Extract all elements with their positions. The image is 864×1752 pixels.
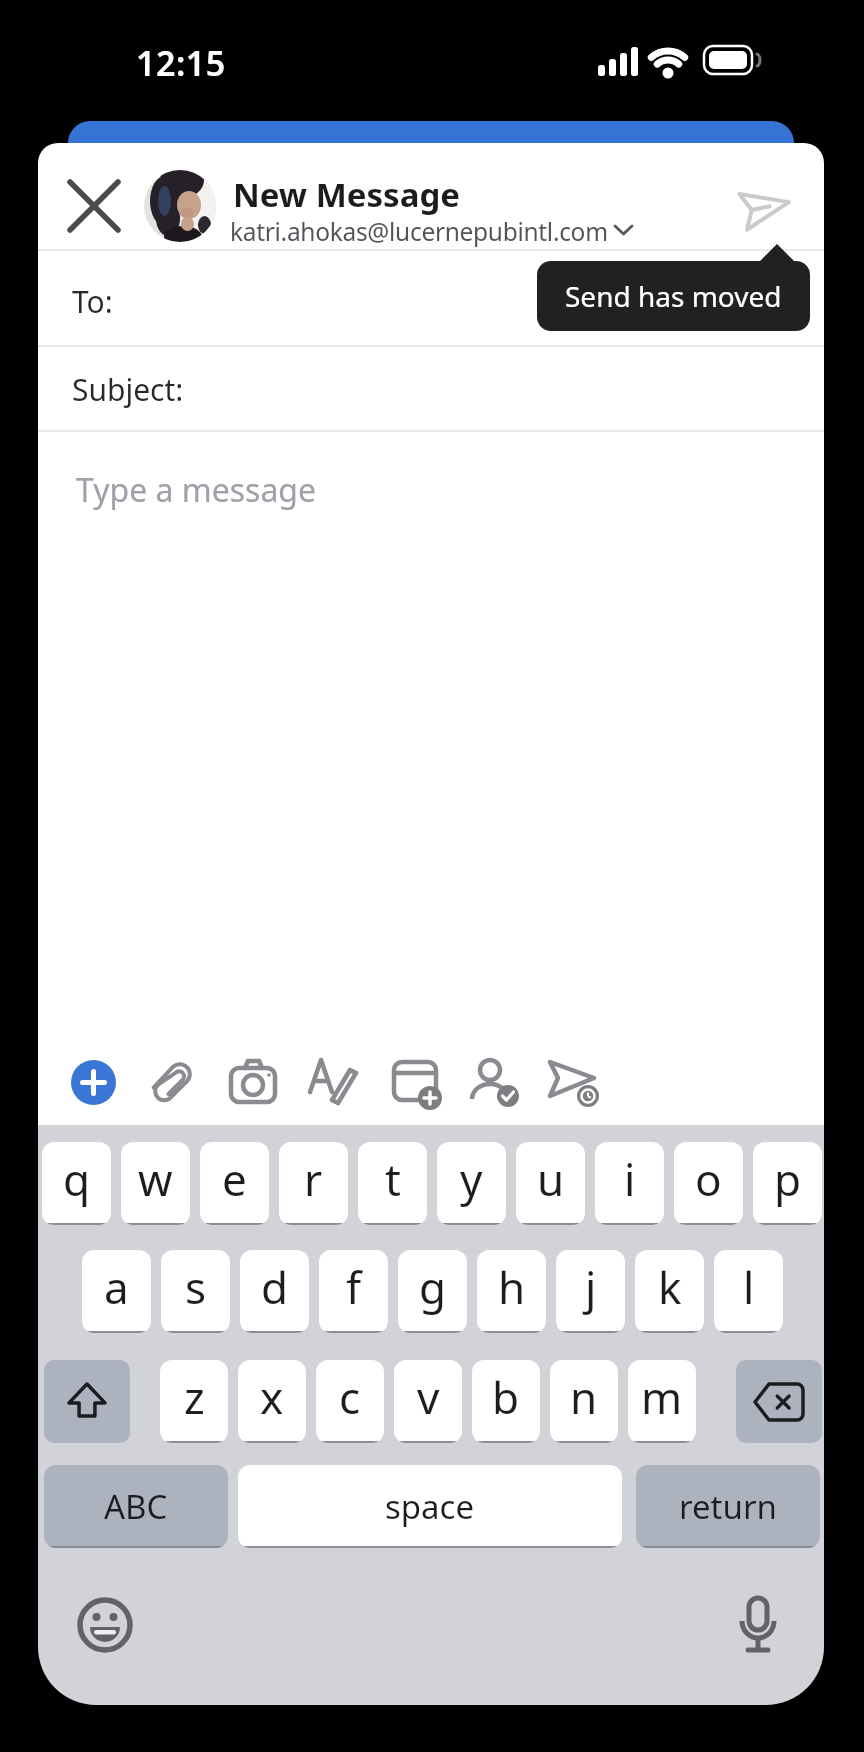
staticText: ABC	[104, 1484, 168, 1529]
staticText: z	[184, 1367, 205, 1427]
staticText: f	[346, 1257, 362, 1317]
button[interactable]	[76, 1596, 134, 1654]
button[interactable]	[71, 1060, 116, 1105]
button[interactable]: x	[238, 1360, 306, 1443]
button[interactable]: g	[398, 1250, 467, 1333]
button[interactable]: r	[279, 1142, 348, 1225]
staticText: k	[658, 1257, 682, 1317]
staticText: g	[419, 1257, 447, 1317]
staticText: katri.ahokas@lucernepubintl.com	[230, 215, 608, 248]
button[interactable]: o	[674, 1142, 743, 1225]
button[interactable]: To:	[38, 251, 824, 346]
staticText: t	[385, 1149, 401, 1209]
staticText: i	[624, 1149, 636, 1209]
staticText: l	[743, 1257, 755, 1317]
button[interactable]: z	[160, 1360, 228, 1443]
button[interactable]	[306, 1056, 358, 1108]
button[interactable]: i	[595, 1142, 664, 1225]
button[interactable]: b	[472, 1360, 540, 1443]
button[interactable]: k	[635, 1250, 704, 1333]
button[interactable]	[548, 1056, 600, 1108]
button[interactable]: return	[636, 1465, 820, 1548]
staticText: e	[222, 1149, 247, 1209]
button[interactable]: j	[556, 1250, 625, 1333]
staticText: Send has moved	[565, 277, 782, 315]
staticText: v	[417, 1367, 440, 1427]
staticText: m	[641, 1367, 683, 1427]
button[interactable]	[730, 1594, 786, 1656]
button[interactable]: a	[82, 1250, 151, 1333]
staticText: r	[304, 1149, 323, 1209]
staticText: return	[679, 1484, 777, 1529]
button[interactable]	[736, 1360, 822, 1443]
button[interactable]: t	[358, 1142, 427, 1225]
staticText: space	[385, 1484, 475, 1529]
button[interactable]: m	[628, 1360, 696, 1443]
button[interactable]: q	[42, 1142, 111, 1225]
staticText: d	[261, 1257, 289, 1317]
staticText: w	[138, 1149, 173, 1209]
button[interactable]: d	[240, 1250, 309, 1333]
button[interactable]: u	[516, 1142, 585, 1225]
staticText: u	[537, 1149, 565, 1209]
staticText: o	[695, 1149, 722, 1209]
button[interactable]	[146, 1056, 198, 1108]
staticText: a	[104, 1257, 129, 1317]
button[interactable]: n	[550, 1360, 618, 1443]
staticText: 12:15	[136, 40, 226, 86]
button[interactable]: v	[394, 1360, 462, 1443]
button[interactable]: e	[200, 1142, 269, 1225]
button[interactable]	[144, 170, 216, 242]
staticText: j	[585, 1257, 597, 1317]
staticText: y	[460, 1149, 483, 1209]
button[interactable]	[227, 1056, 279, 1108]
staticText: n	[570, 1367, 598, 1427]
button[interactable]: Subject:	[38, 347, 824, 431]
button[interactable]	[58, 170, 130, 242]
staticText: q	[63, 1149, 91, 1209]
staticText: c	[339, 1367, 361, 1427]
button[interactable]: f	[319, 1250, 388, 1333]
button[interactable]	[44, 1360, 130, 1443]
staticText: x	[260, 1367, 284, 1427]
staticText: b	[492, 1367, 520, 1427]
button[interactable]: y	[437, 1142, 506, 1225]
button[interactable]	[468, 1056, 520, 1108]
staticText: s	[185, 1257, 207, 1317]
staticText: Subject:	[72, 369, 184, 410]
button[interactable]: h	[477, 1250, 546, 1333]
button[interactable]	[740, 183, 792, 231]
button[interactable]	[390, 1056, 442, 1108]
button[interactable]: p	[753, 1142, 822, 1225]
staticText: Type a message	[76, 468, 317, 512]
button[interactable]: Type a message	[38, 432, 824, 1032]
button[interactable]: space	[238, 1465, 622, 1548]
staticText: p	[774, 1149, 802, 1209]
staticText: h	[498, 1257, 526, 1317]
staticText: New Message	[233, 172, 460, 217]
staticText: To:	[72, 281, 113, 322]
button[interactable]: l	[714, 1250, 783, 1333]
button[interactable]: ABC	[44, 1465, 228, 1548]
button[interactable]: c	[316, 1360, 384, 1443]
button[interactable]: s	[161, 1250, 230, 1333]
button[interactable]: w	[121, 1142, 190, 1225]
